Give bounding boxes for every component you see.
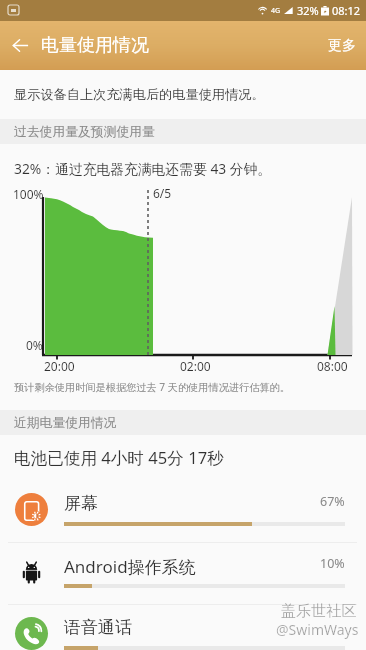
button[interactable]: 语音通话	[0, 607, 366, 650]
staticText: 盖乐世社区	[281, 601, 357, 620]
staticText: 近期电量使用情况	[14, 415, 117, 431]
staticText: 显示设备自上次充满电后的电量使用情况。	[14, 86, 265, 103]
button[interactable]: 更多	[314, 21, 366, 70]
staticText: 6/5	[153, 185, 172, 201]
staticText: 100%	[13, 186, 44, 202]
staticText: 过去使用量及预测使用量	[14, 124, 155, 140]
staticText: 08:12	[332, 3, 361, 18]
staticText: 4G	[271, 6, 281, 16]
staticText: 电池已使用 4小时 45分 17秒	[14, 446, 224, 469]
button[interactable]: Android操作系统	[0, 545, 366, 607]
staticText: 08:00	[317, 358, 348, 374]
staticText: 32%	[297, 3, 319, 18]
staticText: 10%	[320, 555, 345, 572]
staticText: 屏幕	[64, 493, 98, 514]
staticText: Android操作系统	[64, 555, 196, 578]
staticText: 预计剩余使用时间是根据您过去 7 天的使用情况进行估算的。	[14, 380, 290, 394]
button[interactable]: Back	[0, 21, 41, 70]
staticText: 20:00	[44, 358, 75, 374]
staticText: @SwimWays	[276, 620, 359, 639]
staticText: 语音通话	[64, 617, 132, 638]
staticText: 32%：通过充电器充满电还需要 43 分钟。	[14, 159, 272, 178]
button[interactable]: 屏幕	[0, 483, 366, 545]
staticText: 0%	[26, 337, 43, 353]
staticText: 电量使用情况	[41, 34, 149, 57]
staticText: 67%	[320, 493, 345, 510]
staticText: 02:00	[180, 358, 211, 374]
staticText: 更多	[328, 37, 356, 55]
